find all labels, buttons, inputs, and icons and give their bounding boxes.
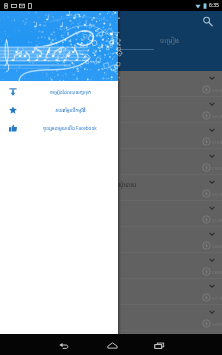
button[interactable]: Home bbox=[102, 335, 122, 355]
staticText: 4.01 MB bbox=[212, 114, 222, 119]
button[interactable]: 4.01 MB bbox=[0, 97, 222, 123]
button[interactable]: 3.35 MB bbox=[0, 71, 222, 97]
staticText: វាយតម្លៃលើកម្មវិធី bbox=[55, 107, 86, 113]
button[interactable]: 3.09 MB bbox=[0, 305, 222, 331]
staticText: 2.85 MB bbox=[212, 270, 222, 275]
button[interactable]: 2.92 MB bbox=[0, 149, 222, 175]
button[interactable]: ចូលរួមជាមួយយើង Facebook bbox=[0, 119, 118, 137]
staticText: 6:35 bbox=[209, 2, 219, 9]
staticText: 4.12 MB bbox=[212, 218, 222, 223]
staticText: 2.92 MB bbox=[212, 166, 222, 171]
button[interactable]: Search bbox=[198, 12, 216, 30]
button[interactable]: Back bbox=[53, 335, 73, 355]
staticText: ចម្រៀងដែលបានរក្សាទុក bbox=[50, 89, 91, 95]
staticText: សុំទោស bbox=[118, 181, 137, 189]
button[interactable]: 3.18 MB bbox=[0, 123, 222, 149]
button[interactable]: 3.71 MB bbox=[0, 279, 222, 305]
staticText: 3.35 MB bbox=[212, 88, 222, 93]
button[interactable]: 4.30 MB bbox=[0, 331, 222, 334]
staticText: 3.09 MB bbox=[212, 322, 222, 327]
staticText: ចូលរួមជាមួយយើង Facebook bbox=[43, 125, 97, 131]
staticText: 3.67 MB bbox=[212, 192, 222, 197]
staticText: ចម្រៀង bbox=[160, 36, 180, 46]
button[interactable]: 4.12 MB bbox=[0, 201, 222, 227]
button[interactable]: 3.44 MB bbox=[0, 227, 222, 253]
button[interactable]: Recents bbox=[149, 335, 169, 355]
button[interactable]: វាយតម្លៃលើកម្មវិធី bbox=[0, 101, 118, 119]
staticText: 3.18 MB bbox=[212, 140, 222, 145]
button[interactable]: សុំទោស bbox=[0, 175, 222, 201]
staticText: 3.71 MB bbox=[212, 296, 222, 301]
button[interactable]: ចម្រៀងដែលបានរក្សាទុក bbox=[0, 83, 118, 101]
button[interactable]: 2.85 MB bbox=[0, 253, 222, 279]
staticText: 3.44 MB bbox=[212, 244, 222, 249]
